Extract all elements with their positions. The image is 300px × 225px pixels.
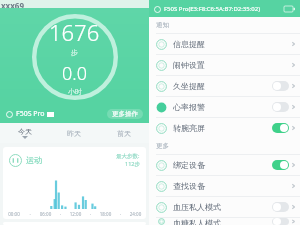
staticText: 血糖私人模式: [173, 218, 221, 225]
staticText: 18:00: [98, 211, 113, 217]
staticText: 转腕亮屏: [173, 123, 205, 133]
staticText: F50S Pro(E3:F8:C6:5A:B7:D2:35:02): [164, 5, 260, 13]
staticText: 通知: [156, 21, 169, 29]
staticText: 0.0: [62, 61, 87, 86]
staticText: 步: [71, 48, 78, 57]
staticText: ·: [83, 211, 98, 217]
button[interactable]: F50S Pro: [0, 105, 149, 123]
button[interactable]: 久坐提醒: [149, 76, 300, 97]
button[interactable]: Off: [272, 81, 289, 91]
button[interactable]: 更多操作: [107, 109, 143, 119]
button[interactable]: Off: [272, 218, 289, 225]
staticText: ·: [53, 211, 68, 217]
staticText: 最大步数:: [116, 152, 140, 160]
button[interactable]: 运动: [3, 147, 146, 219]
staticText: xxx69: [1, 0, 25, 8]
staticText: 00:00: [6, 211, 22, 217]
button[interactable]: 心率报警: [149, 97, 300, 118]
button[interactable]: 绑定设备: [149, 155, 300, 176]
staticText: 小时: [68, 87, 82, 96]
staticText: 前天: [117, 129, 131, 138]
button[interactable]: On: [272, 123, 289, 133]
staticText: 心率报警: [173, 102, 205, 112]
button[interactable]: On: [272, 160, 289, 170]
button[interactable]: Off: [272, 102, 289, 112]
button[interactable]: 闹钟设置: [149, 55, 300, 76]
button[interactable]: 信息提醒: [149, 34, 300, 55]
staticText: 今天: [18, 127, 32, 136]
button[interactable]: 血糖私人模式: [149, 218, 300, 225]
button[interactable]: 今天: [0, 123, 49, 143]
staticText: 信息提醒: [173, 39, 205, 49]
button[interactable]: 昨天: [49, 123, 99, 143]
staticText: 1676: [49, 17, 100, 47]
staticText: 24:00: [128, 211, 143, 217]
button[interactable]: Off: [272, 202, 289, 212]
staticText: F50S Pro: [16, 109, 45, 119]
staticText: ·: [22, 211, 38, 217]
staticText: 查找设备: [173, 181, 205, 191]
staticText: 更多操作: [112, 110, 138, 118]
staticText: 昨天: [67, 129, 81, 138]
staticText: 久坐提醒: [173, 81, 205, 91]
staticText: 更多: [156, 142, 169, 150]
staticText: 运动: [26, 155, 42, 165]
button[interactable]: 前天: [99, 123, 149, 143]
staticText: 闹钟设置: [173, 60, 205, 70]
button[interactable]: 查找设备: [149, 176, 300, 197]
staticText: 绑定设备: [173, 160, 205, 170]
button[interactable]: 血压私人模式: [149, 197, 300, 218]
staticText: ·: [113, 211, 128, 217]
staticText: 06:00: [38, 211, 53, 217]
staticText: 12:00: [68, 211, 83, 217]
staticText: 112步: [125, 160, 140, 168]
staticText: 血压私人模式: [173, 202, 221, 212]
button[interactable]: 转腕亮屏: [149, 118, 300, 138]
